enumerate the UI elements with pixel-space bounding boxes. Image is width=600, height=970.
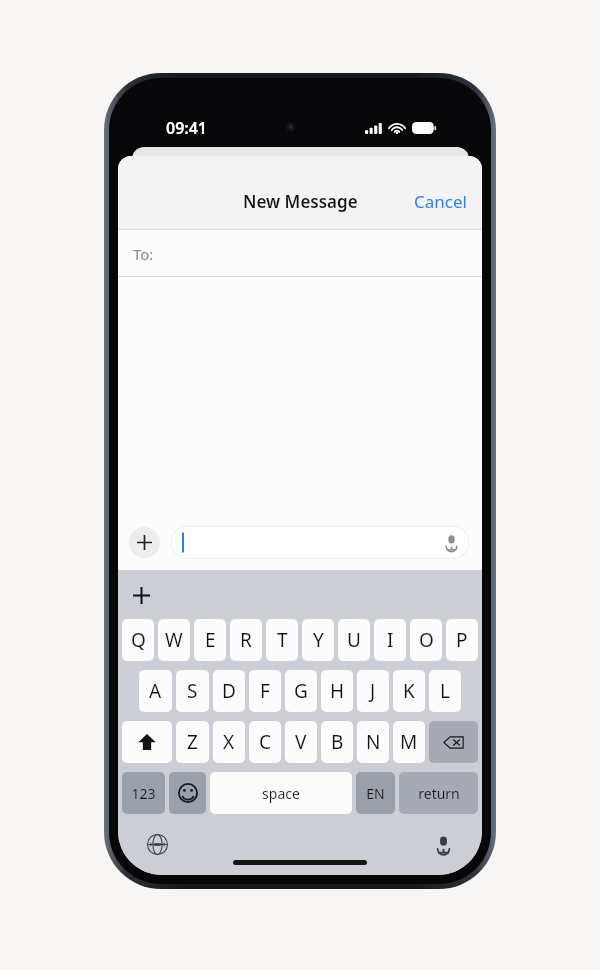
- staticText: T: [277, 627, 288, 653]
- button[interactable]: S: [176, 670, 209, 712]
- button[interactable]: space: [210, 772, 352, 814]
- staticText: E: [205, 627, 216, 653]
- button[interactable]: Shift: [122, 721, 172, 763]
- button[interactable]: Add attachment: [129, 527, 160, 558]
- button[interactable]: T: [266, 619, 298, 661]
- staticText: O: [419, 627, 434, 653]
- button[interactable]: K: [393, 670, 425, 712]
- button[interactable]: Z: [176, 721, 209, 763]
- button[interactable]: V: [285, 721, 317, 763]
- button[interactable]: To:: [118, 230, 482, 277]
- staticText: H: [330, 678, 345, 704]
- staticText: S: [187, 678, 198, 704]
- staticText: G: [294, 678, 308, 704]
- staticText: A: [149, 678, 162, 704]
- button[interactable]: R: [230, 619, 262, 661]
- button[interactable]: O: [410, 619, 442, 661]
- button[interactable]: D: [213, 670, 245, 712]
- button[interactable]: A: [139, 670, 172, 712]
- staticText: C: [259, 729, 272, 755]
- staticText: Y: [313, 627, 324, 653]
- staticText: J: [370, 678, 376, 704]
- staticText: W: [165, 627, 183, 653]
- button[interactable]: G: [285, 670, 317, 712]
- button[interactable]: return: [399, 772, 478, 814]
- button[interactable]: C: [249, 721, 281, 763]
- staticText: V: [295, 729, 307, 755]
- staticText: space: [262, 784, 300, 803]
- staticText: U: [347, 627, 361, 653]
- button[interactable]: I: [374, 619, 406, 661]
- button[interactable]: W: [158, 619, 190, 661]
- staticText: 09:41: [166, 117, 208, 139]
- staticText: I: [387, 627, 394, 653]
- button[interactable]: Dictate: [171, 526, 469, 559]
- staticText: To:: [133, 244, 154, 264]
- button[interactable]: B: [321, 721, 353, 763]
- button[interactable]: Emoji: [169, 772, 206, 814]
- button[interactable]: X: [213, 721, 245, 763]
- button[interactable]: U: [338, 619, 370, 661]
- button[interactable]: N: [357, 721, 389, 763]
- staticText: D: [222, 678, 236, 704]
- staticText: M: [400, 729, 418, 755]
- button[interactable]: Dictate: [443, 534, 460, 551]
- staticText: EN: [366, 784, 385, 803]
- staticText: Cancel: [414, 190, 467, 213]
- button[interactable]: Backspace: [429, 721, 478, 763]
- staticText: B: [331, 729, 344, 755]
- button[interactable]: Cancel: [399, 182, 482, 221]
- button[interactable]: Y: [302, 619, 334, 661]
- staticText: F: [260, 678, 270, 704]
- button[interactable]: P: [446, 619, 478, 661]
- button[interactable]: E: [194, 619, 226, 661]
- staticText: X: [223, 729, 235, 755]
- staticText: K: [403, 678, 415, 704]
- staticText: New Message: [243, 190, 358, 213]
- staticText: 123: [131, 784, 156, 803]
- button[interactable]: EN: [356, 772, 395, 814]
- button[interactable]: M: [393, 721, 425, 763]
- staticText: Z: [187, 729, 198, 755]
- button[interactable]: Voice input: [428, 829, 458, 859]
- button[interactable]: 123: [122, 772, 165, 814]
- staticText: L: [440, 678, 450, 704]
- button[interactable]: Keyboard actions: [125, 579, 157, 611]
- staticText: N: [366, 729, 381, 755]
- button[interactable]: L: [429, 670, 461, 712]
- staticText: P: [456, 627, 468, 653]
- button[interactable]: Q: [122, 619, 154, 661]
- button[interactable]: F: [249, 670, 281, 712]
- button[interactable]: H: [321, 670, 353, 712]
- staticText: Q: [131, 627, 146, 653]
- button[interactable]: Change keyboard: [142, 829, 172, 859]
- button[interactable]: J: [357, 670, 389, 712]
- staticText: return: [418, 784, 460, 803]
- staticText: R: [240, 627, 252, 653]
